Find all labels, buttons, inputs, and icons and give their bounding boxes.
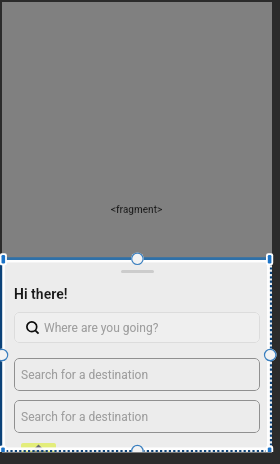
button[interactable]: Drag handle — [121, 270, 154, 273]
button[interactable]: Where are you going? — [14, 312, 260, 343]
button[interactable]: Search for a destination — [14, 400, 260, 433]
staticText: Where are you going? — [44, 321, 159, 335]
staticText: Search for a destination — [21, 410, 149, 424]
staticText: <fragment> — [111, 204, 163, 216]
staticText: Search for a destination — [21, 368, 149, 382]
button[interactable]: Action — [21, 443, 56, 452]
staticText: Hi there! — [14, 286, 68, 302]
button[interactable]: Search for a destination — [14, 358, 260, 391]
